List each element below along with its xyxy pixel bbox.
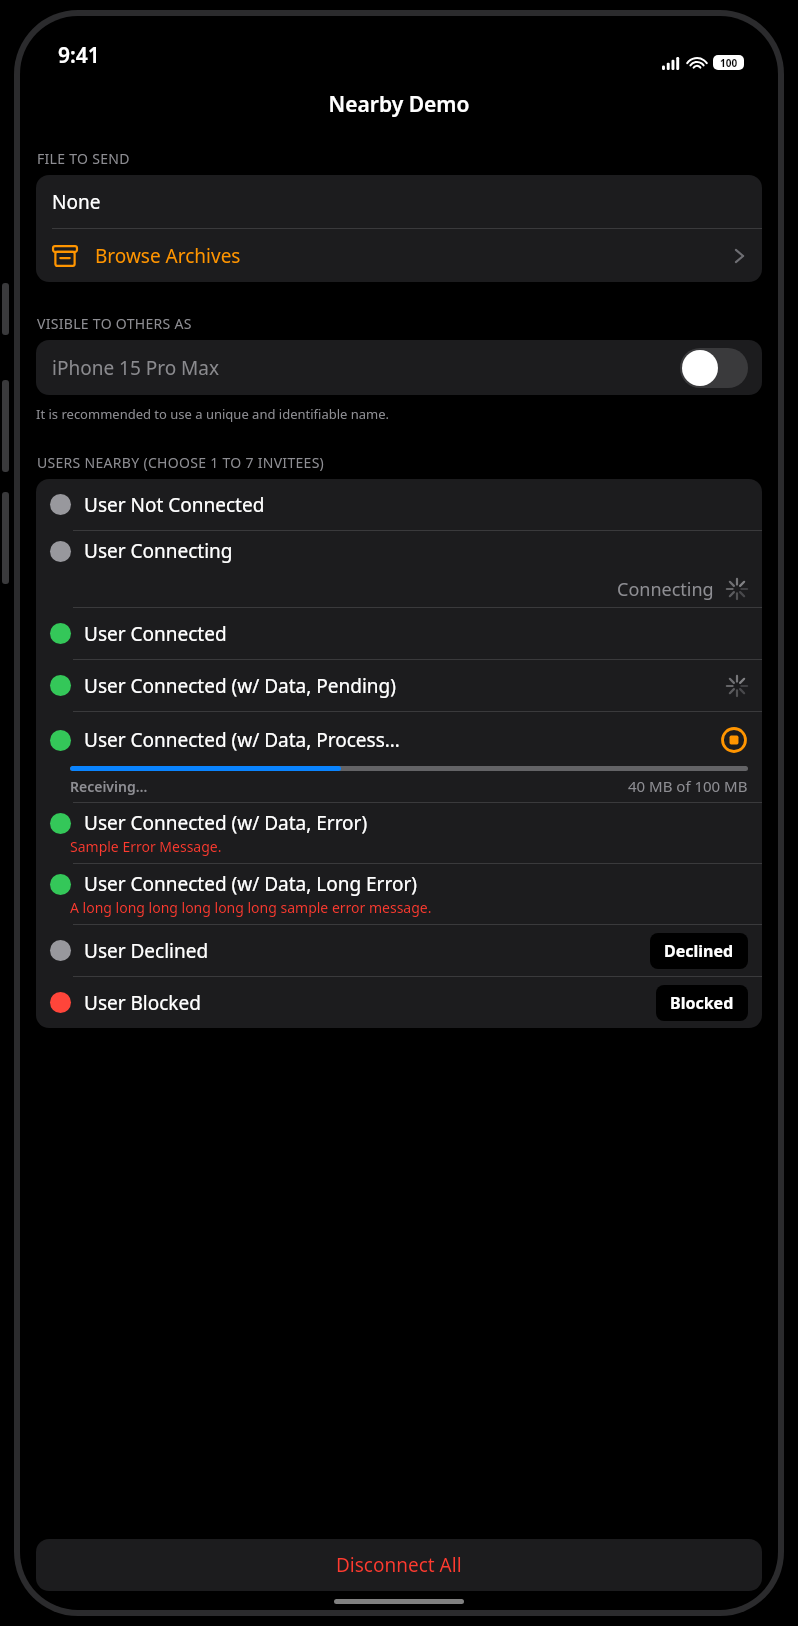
button[interactable]: User Blocked	[36, 977, 762, 1028]
staticText: User Declined	[84, 938, 650, 964]
staticText: It is recommended to use a unique and id…	[36, 405, 390, 423]
staticText: User Connected (w/ Data, Pending)	[84, 673, 726, 699]
staticText: User Connected (w/ Data, Error)	[84, 810, 368, 836]
button[interactable]: Declined	[650, 933, 748, 969]
staticText: Nearby Demo	[20, 90, 778, 119]
staticText: User Not Connected	[84, 492, 748, 518]
button[interactable]: User Connecting	[36, 531, 762, 607]
staticText: A long long long long long long sample e…	[70, 898, 432, 917]
button[interactable]: Stop transfer	[720, 726, 748, 754]
button[interactable]: Visibility toggle	[680, 348, 748, 388]
other: Loading	[726, 675, 748, 697]
other: Loading	[726, 578, 748, 600]
staticText: Declined	[664, 940, 734, 962]
staticText: 100	[720, 56, 738, 70]
staticText: VISIBLE TO OTHERS AS	[37, 314, 192, 333]
staticText: User Blocked	[84, 990, 656, 1016]
staticText: 40 MB of 100 MB	[628, 776, 748, 796]
staticText: User Connected	[84, 621, 748, 647]
staticText: iPhone 15 Pro Max	[52, 355, 680, 381]
button[interactable]: Archive	[36, 229, 762, 282]
button[interactable]: User Declined	[36, 925, 762, 976]
button[interactable]: User Connected (w/ Data, Long Error)	[36, 864, 762, 924]
staticText: Browse Archives	[95, 243, 733, 269]
staticText: FILE TO SEND	[37, 149, 130, 168]
staticText: Receiving…	[70, 777, 628, 796]
button[interactable]: User Connected (w/ Data, Error)	[36, 803, 762, 863]
staticText: Disconnect All	[336, 1552, 462, 1578]
staticText: Connecting	[617, 577, 714, 602]
button[interactable]: Disconnect All	[36, 1539, 762, 1591]
staticText: User Connecting	[84, 538, 233, 564]
button[interactable]: User Connected (w/ Data, Pending)	[36, 660, 762, 711]
button[interactable]: None	[36, 175, 762, 228]
staticText: USERS NEARBY (CHOOSE 1 TO 7 INVITEES)	[37, 453, 325, 472]
staticText: Blocked	[670, 992, 734, 1014]
button[interactable]: iPhone 15 Pro Max	[36, 340, 762, 395]
staticText: 9:41	[58, 41, 100, 70]
button[interactable]: User Not Connected	[36, 479, 762, 530]
staticText: User Connected (w/ Data, Long Error)	[84, 871, 417, 897]
staticText: User Connected (w/ Data, Process…	[84, 727, 714, 753]
button[interactable]: User Connected	[36, 608, 762, 659]
staticText: Sample Error Message.	[70, 837, 222, 856]
staticText: None	[52, 189, 101, 215]
button[interactable]: Blocked	[656, 985, 748, 1021]
button[interactable]: User Connected (w/ Data, Process…	[36, 712, 762, 802]
other: Archive	[52, 243, 78, 269]
